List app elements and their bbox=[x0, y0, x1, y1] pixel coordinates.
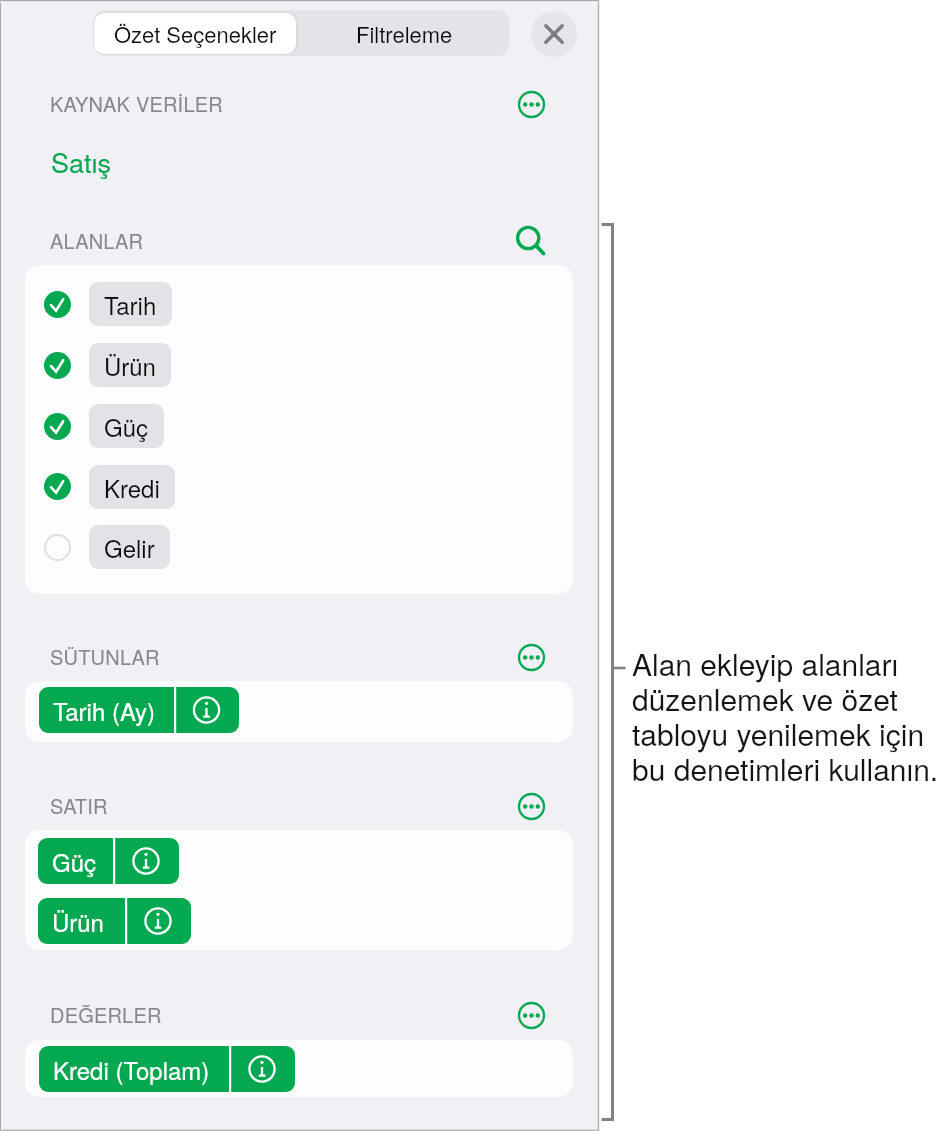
staticText: Ürün bbox=[104, 348, 156, 382]
button[interactable]: Kredi (Toplam) bbox=[39, 1046, 229, 1092]
button[interactable]: Kapat bbox=[531, 11, 577, 57]
staticText: Güç bbox=[52, 844, 97, 878]
staticText: Gelir bbox=[104, 530, 155, 564]
button[interactable]: Kredi bbox=[89, 465, 175, 509]
button[interactable]: Filtreleme bbox=[301, 12, 507, 55]
button[interactable]: Ürün bbox=[38, 898, 125, 944]
staticText: Kredi bbox=[104, 470, 160, 504]
button[interactable]: Bilgi bbox=[229, 1046, 295, 1092]
button[interactable]: Ara bbox=[512, 222, 546, 256]
staticText: Filtreleme bbox=[356, 18, 453, 50]
staticText: Ürün bbox=[52, 904, 104, 938]
button[interactable]: Bilgi bbox=[125, 898, 191, 944]
staticText: DEĞERLER bbox=[50, 1000, 162, 1029]
button[interactable]: Daha fazla seçenek bbox=[517, 792, 546, 821]
staticText: SATIR bbox=[50, 791, 108, 820]
button[interactable]: Gelir bbox=[89, 525, 170, 569]
staticText: Satış bbox=[51, 142, 112, 181]
button[interactable]: Tarih (Ay) bbox=[39, 687, 174, 733]
button[interactable]: Güç seçili bbox=[44, 413, 71, 440]
button[interactable]: Kredi seçili bbox=[44, 473, 71, 500]
button[interactable]: Tarih seçili bbox=[44, 291, 71, 318]
staticText: Tarih bbox=[104, 287, 157, 321]
button[interactable]: Güç bbox=[38, 838, 113, 884]
button[interactable]: Ürün bbox=[89, 343, 171, 387]
button[interactable]: Bilgi bbox=[174, 687, 239, 733]
button[interactable]: Daha fazla seçenek bbox=[517, 90, 546, 119]
button[interactable]: Özet Seçenekler bbox=[94, 13, 296, 54]
staticText: KAYNAK VERİLER bbox=[50, 89, 223, 118]
button[interactable]: Güç bbox=[89, 404, 164, 448]
button[interactable]: Tarih bbox=[89, 282, 172, 326]
staticText: Güç bbox=[104, 409, 149, 443]
button[interactable]: Bilgi bbox=[113, 838, 179, 884]
staticText: Tarih (Ay) bbox=[53, 693, 156, 727]
button[interactable]: Daha fazla seçenek bbox=[517, 643, 546, 672]
button[interactable]: Gelir seçili değil bbox=[44, 534, 71, 561]
button[interactable]: Daha fazla seçenek bbox=[517, 1001, 546, 1030]
staticText: Özet Seçenekler bbox=[114, 18, 277, 50]
staticText: Alan ekleyip alanları düzenlemek ve özet… bbox=[632, 642, 944, 789]
staticText: Kredi (Toplam) bbox=[53, 1052, 210, 1086]
button[interactable]: Ürün seçili bbox=[44, 352, 71, 379]
staticText: ALANLAR bbox=[50, 226, 144, 255]
staticText: SÜTUNLAR bbox=[50, 642, 160, 671]
button[interactable]: Satış bbox=[51, 142, 112, 181]
